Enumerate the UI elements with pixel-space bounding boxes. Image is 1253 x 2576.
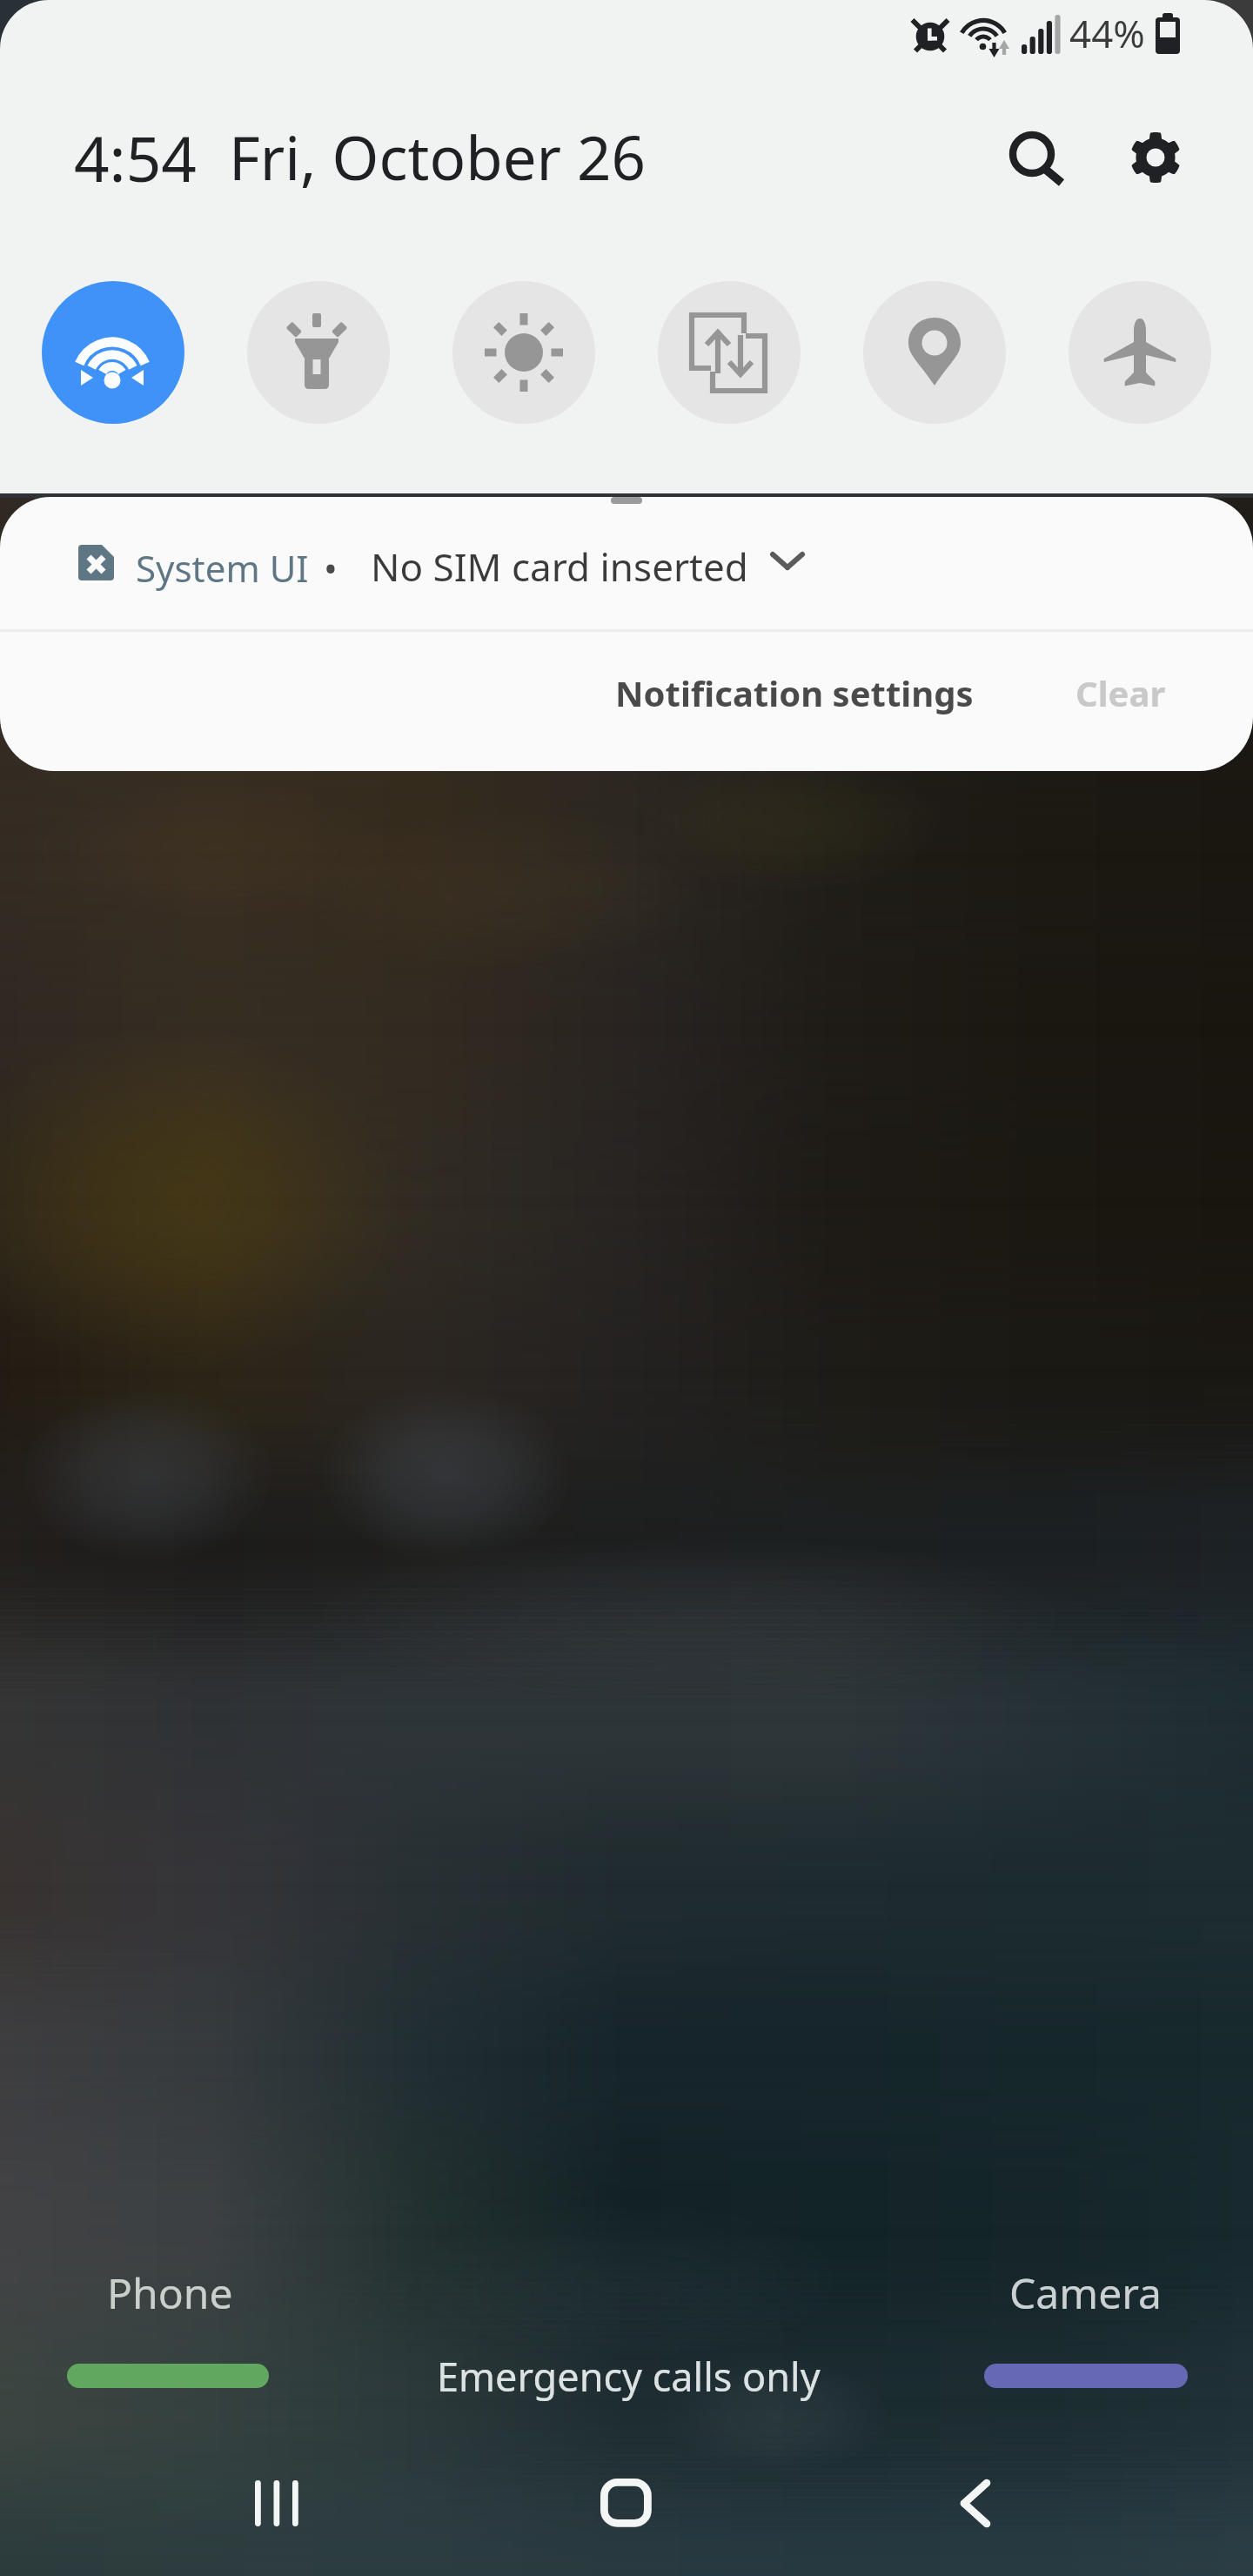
staticText: System UI xyxy=(136,543,309,593)
staticText: 4:54 xyxy=(74,116,197,200)
staticText: Emergency calls only xyxy=(437,2350,821,2403)
button[interactable]: Location xyxy=(863,281,1006,424)
button[interactable]: Auto rotate xyxy=(658,281,801,424)
button[interactable] xyxy=(600,632,992,771)
button[interactable] xyxy=(35,2228,296,2385)
button[interactable]: Recent apps xyxy=(174,2437,331,2550)
button[interactable]: Back xyxy=(922,2437,1079,2550)
button[interactable]: Flight mode xyxy=(1069,281,1211,424)
staticText: Camera xyxy=(1009,2264,1163,2321)
button[interactable]: Settings xyxy=(1107,109,1203,205)
button[interactable]: Flashlight xyxy=(247,281,390,424)
staticText: Fri, October 26 xyxy=(229,116,646,198)
button[interactable]: Home xyxy=(548,2437,705,2550)
staticText: Phone xyxy=(107,2264,233,2321)
staticText: No SIM card inserted xyxy=(371,540,748,593)
button[interactable]: Brightness xyxy=(452,281,595,424)
button[interactable]: Search xyxy=(983,109,1079,205)
button[interactable] xyxy=(0,497,1253,629)
staticText: Clear xyxy=(1075,669,1166,716)
button[interactable]: Wi-Fi xyxy=(42,281,184,424)
staticText: Notification settings xyxy=(615,669,974,716)
staticText: • xyxy=(324,543,338,593)
button[interactable] xyxy=(957,2228,1218,2385)
staticText: 44% xyxy=(1069,7,1145,59)
button[interactable] xyxy=(1035,632,1218,771)
